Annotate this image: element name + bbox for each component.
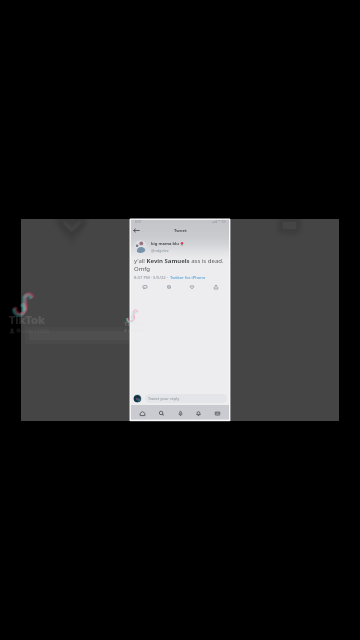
button[interactable]: Back: [132, 226, 141, 235]
button[interactable]: Search: [155, 407, 168, 420]
staticText: user12345: [128, 328, 145, 333]
button[interactable]: Spaces: [174, 407, 187, 420]
button[interactable]: Share: [211, 282, 220, 291]
button[interactable]: Like: [187, 282, 196, 291]
staticText: Twitter for iPhone: [170, 275, 206, 281]
staticText: Tweet: [174, 228, 187, 234]
staticText: user12345: [22, 327, 50, 334]
staticText: @ndgirlzz: [151, 248, 169, 253]
staticText: TikTok: [9, 312, 45, 327]
button[interactable]: Notifications: [192, 407, 205, 420]
staticText: 8:37: [135, 220, 142, 224]
button[interactable]: Home: [136, 407, 149, 420]
button[interactable]: Retweet: [164, 282, 173, 291]
button[interactable]: Reply: [140, 282, 149, 291]
button[interactable]: Messages: [211, 407, 224, 420]
staticText: y'all Kevin Samuels ass is dead. Omfg: [134, 257, 226, 273]
staticText: 8:37 PM · 5/5/22 ·: [134, 275, 170, 281]
staticText: TikTok: [124, 320, 144, 328]
staticText: Tweet your reply: [148, 396, 180, 401]
button[interactable]: Tweet your reply: [145, 394, 227, 403]
staticText: big mama blu: [151, 241, 179, 247]
